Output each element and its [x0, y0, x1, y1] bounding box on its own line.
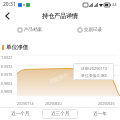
staticText: 20250820	[45, 101, 62, 106]
button[interactable]: 近一年	[82, 109, 118, 119]
staticText: 34	[112, 2, 117, 7]
staticText: 产品档案	[24, 27, 42, 33]
staticText: 近一年	[93, 111, 107, 117]
staticText: 1.0027	[1, 55, 13, 60]
staticText: 交易记录	[84, 27, 102, 33]
staticText: 0.9809	[1, 89, 13, 94]
staticText: 近一个月	[11, 111, 30, 117]
staticText: 持仓产品详情	[42, 12, 78, 20]
staticText: 20:31	[3, 1, 16, 8]
button[interactable]: Back	[0, 9, 14, 23]
button[interactable]: 交易记录	[60, 23, 120, 37]
staticText: 20250925	[98, 101, 115, 106]
staticText: 20250714	[17, 101, 34, 106]
button[interactable]: 近一个月	[2, 109, 38, 119]
staticText: 0.9863	[1, 81, 13, 86]
button[interactable]: 产品档案	[0, 23, 60, 37]
staticText: 0.9918	[1, 72, 13, 77]
staticText: 单位净值	[6, 44, 28, 51]
staticText: 0.9972	[1, 64, 13, 69]
staticText: 近三个月	[51, 111, 70, 117]
staticText: 招商银行	[49, 71, 69, 85]
staticText: 日期:20250113	[81, 66, 107, 71]
staticText: 单位净值:0.985	[81, 73, 107, 78]
button[interactable]: 近三个月	[42, 109, 78, 119]
